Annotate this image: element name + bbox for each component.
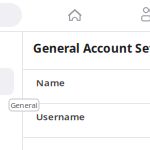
button[interactable]: Home [63, 3, 87, 27]
staticText: Username [36, 110, 85, 123]
staticText: General Account Settings [33, 40, 150, 56]
button[interactable]: People [136, 2, 150, 26]
staticText: General [10, 100, 37, 110]
staticText: Name [36, 76, 65, 89]
